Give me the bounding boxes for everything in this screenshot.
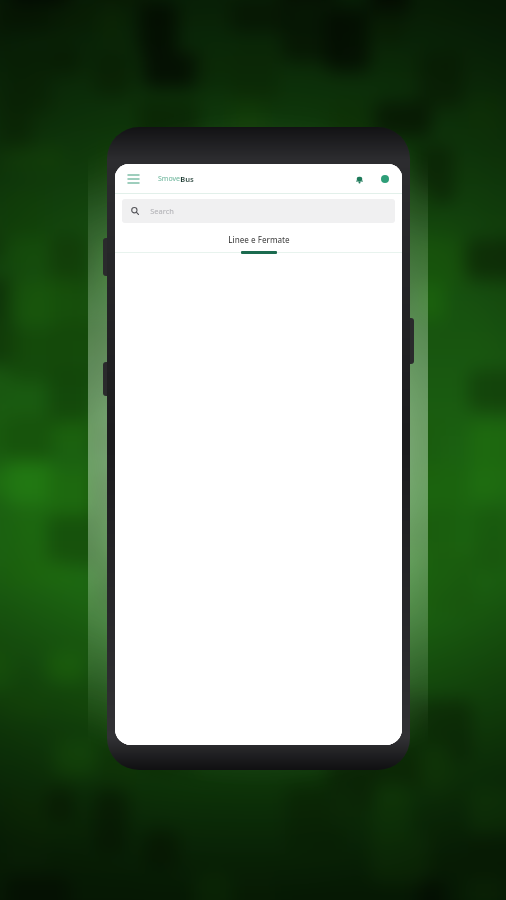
button[interactable]: Linee e Fermate xyxy=(115,228,402,250)
staticText: Search xyxy=(150,206,174,216)
button[interactable]: Open navigation menu xyxy=(124,170,142,188)
staticText: Smove xyxy=(158,174,180,184)
button[interactable]: Notifications xyxy=(351,171,367,187)
button[interactable]: Account xyxy=(377,171,393,187)
button[interactable]: Search xyxy=(122,199,395,223)
staticText: Bus xyxy=(180,174,194,184)
staticText: Linee e Fermate xyxy=(228,234,290,245)
